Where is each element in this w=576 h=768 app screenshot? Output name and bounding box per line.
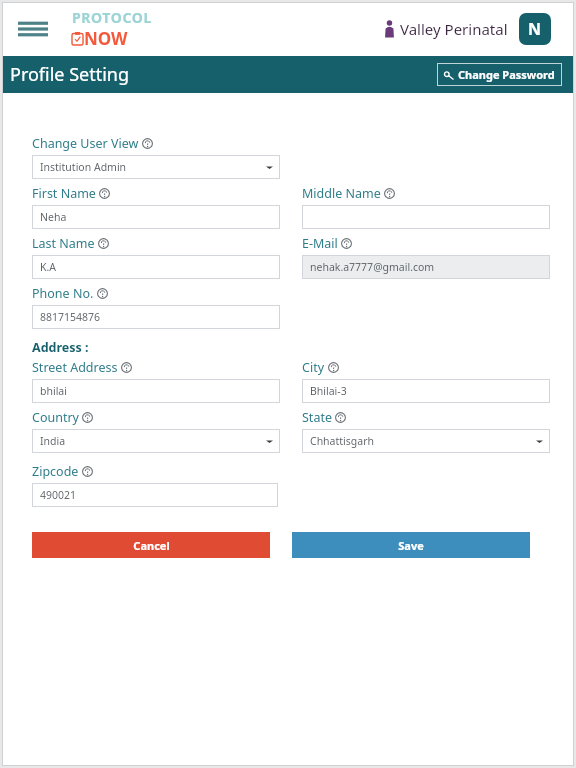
- staticText: N: [528, 18, 542, 40]
- staticText: Cancel: [133, 538, 170, 553]
- button[interactable]: Save: [292, 532, 530, 558]
- staticText: Zipcode: [32, 463, 79, 480]
- staticText: Profile Setting: [10, 62, 130, 87]
- button[interactable]: Cancel: [32, 532, 270, 558]
- staticText: Bhilai-3: [310, 384, 347, 398]
- staticText: 8817154876: [40, 310, 101, 324]
- staticText: Neha: [40, 210, 67, 224]
- staticText: First Name: [32, 185, 96, 202]
- button[interactable]: Menu: [18, 20, 48, 38]
- button[interactable]: K.A: [32, 255, 280, 279]
- button[interactable]: 490021: [32, 483, 278, 507]
- button[interactable]: 8817154876: [32, 305, 280, 329]
- button[interactable]: Chhattisgarh: [302, 429, 550, 453]
- staticText: Chhattisgarh: [310, 434, 374, 448]
- button[interactable]: Institution Admin: [32, 155, 280, 179]
- staticText: Phone No.: [32, 285, 94, 302]
- staticText: PROTOCOL: [72, 8, 152, 27]
- button[interactable]: India: [32, 429, 280, 453]
- staticText: Change User View: [32, 135, 139, 152]
- button[interactable]: bhilai: [32, 379, 280, 403]
- staticText: nehak.a7777@gmail.com: [310, 260, 435, 274]
- staticText: India: [40, 434, 66, 448]
- staticText: K.A: [40, 260, 57, 274]
- staticText: Street Address: [32, 359, 118, 376]
- staticText: bhilai: [40, 384, 67, 398]
- staticText: Institution Admin: [40, 160, 127, 174]
- staticText: Last Name: [32, 235, 95, 252]
- staticText: Save: [398, 538, 424, 553]
- staticText: Address :: [32, 339, 89, 356]
- staticText: NOW: [84, 27, 128, 50]
- staticText: State: [302, 409, 332, 426]
- button[interactable]: nehak.a7777@gmail.com: [302, 255, 550, 279]
- staticText: City: [302, 359, 325, 376]
- staticText: Country: [32, 409, 79, 426]
- staticText: Middle Name: [302, 185, 381, 202]
- button[interactable]: Neha: [32, 205, 280, 229]
- button[interactable]: Change Password: [444, 67, 555, 82]
- button[interactable]: [302, 205, 550, 229]
- staticText: E-Mail: [302, 235, 338, 252]
- staticText: Change Password: [458, 67, 555, 82]
- staticText: 490021: [40, 488, 77, 502]
- button[interactable]: Account: [519, 13, 551, 45]
- staticText: Valley Perinatal: [400, 19, 508, 39]
- button[interactable]: Bhilai-3: [302, 379, 550, 403]
